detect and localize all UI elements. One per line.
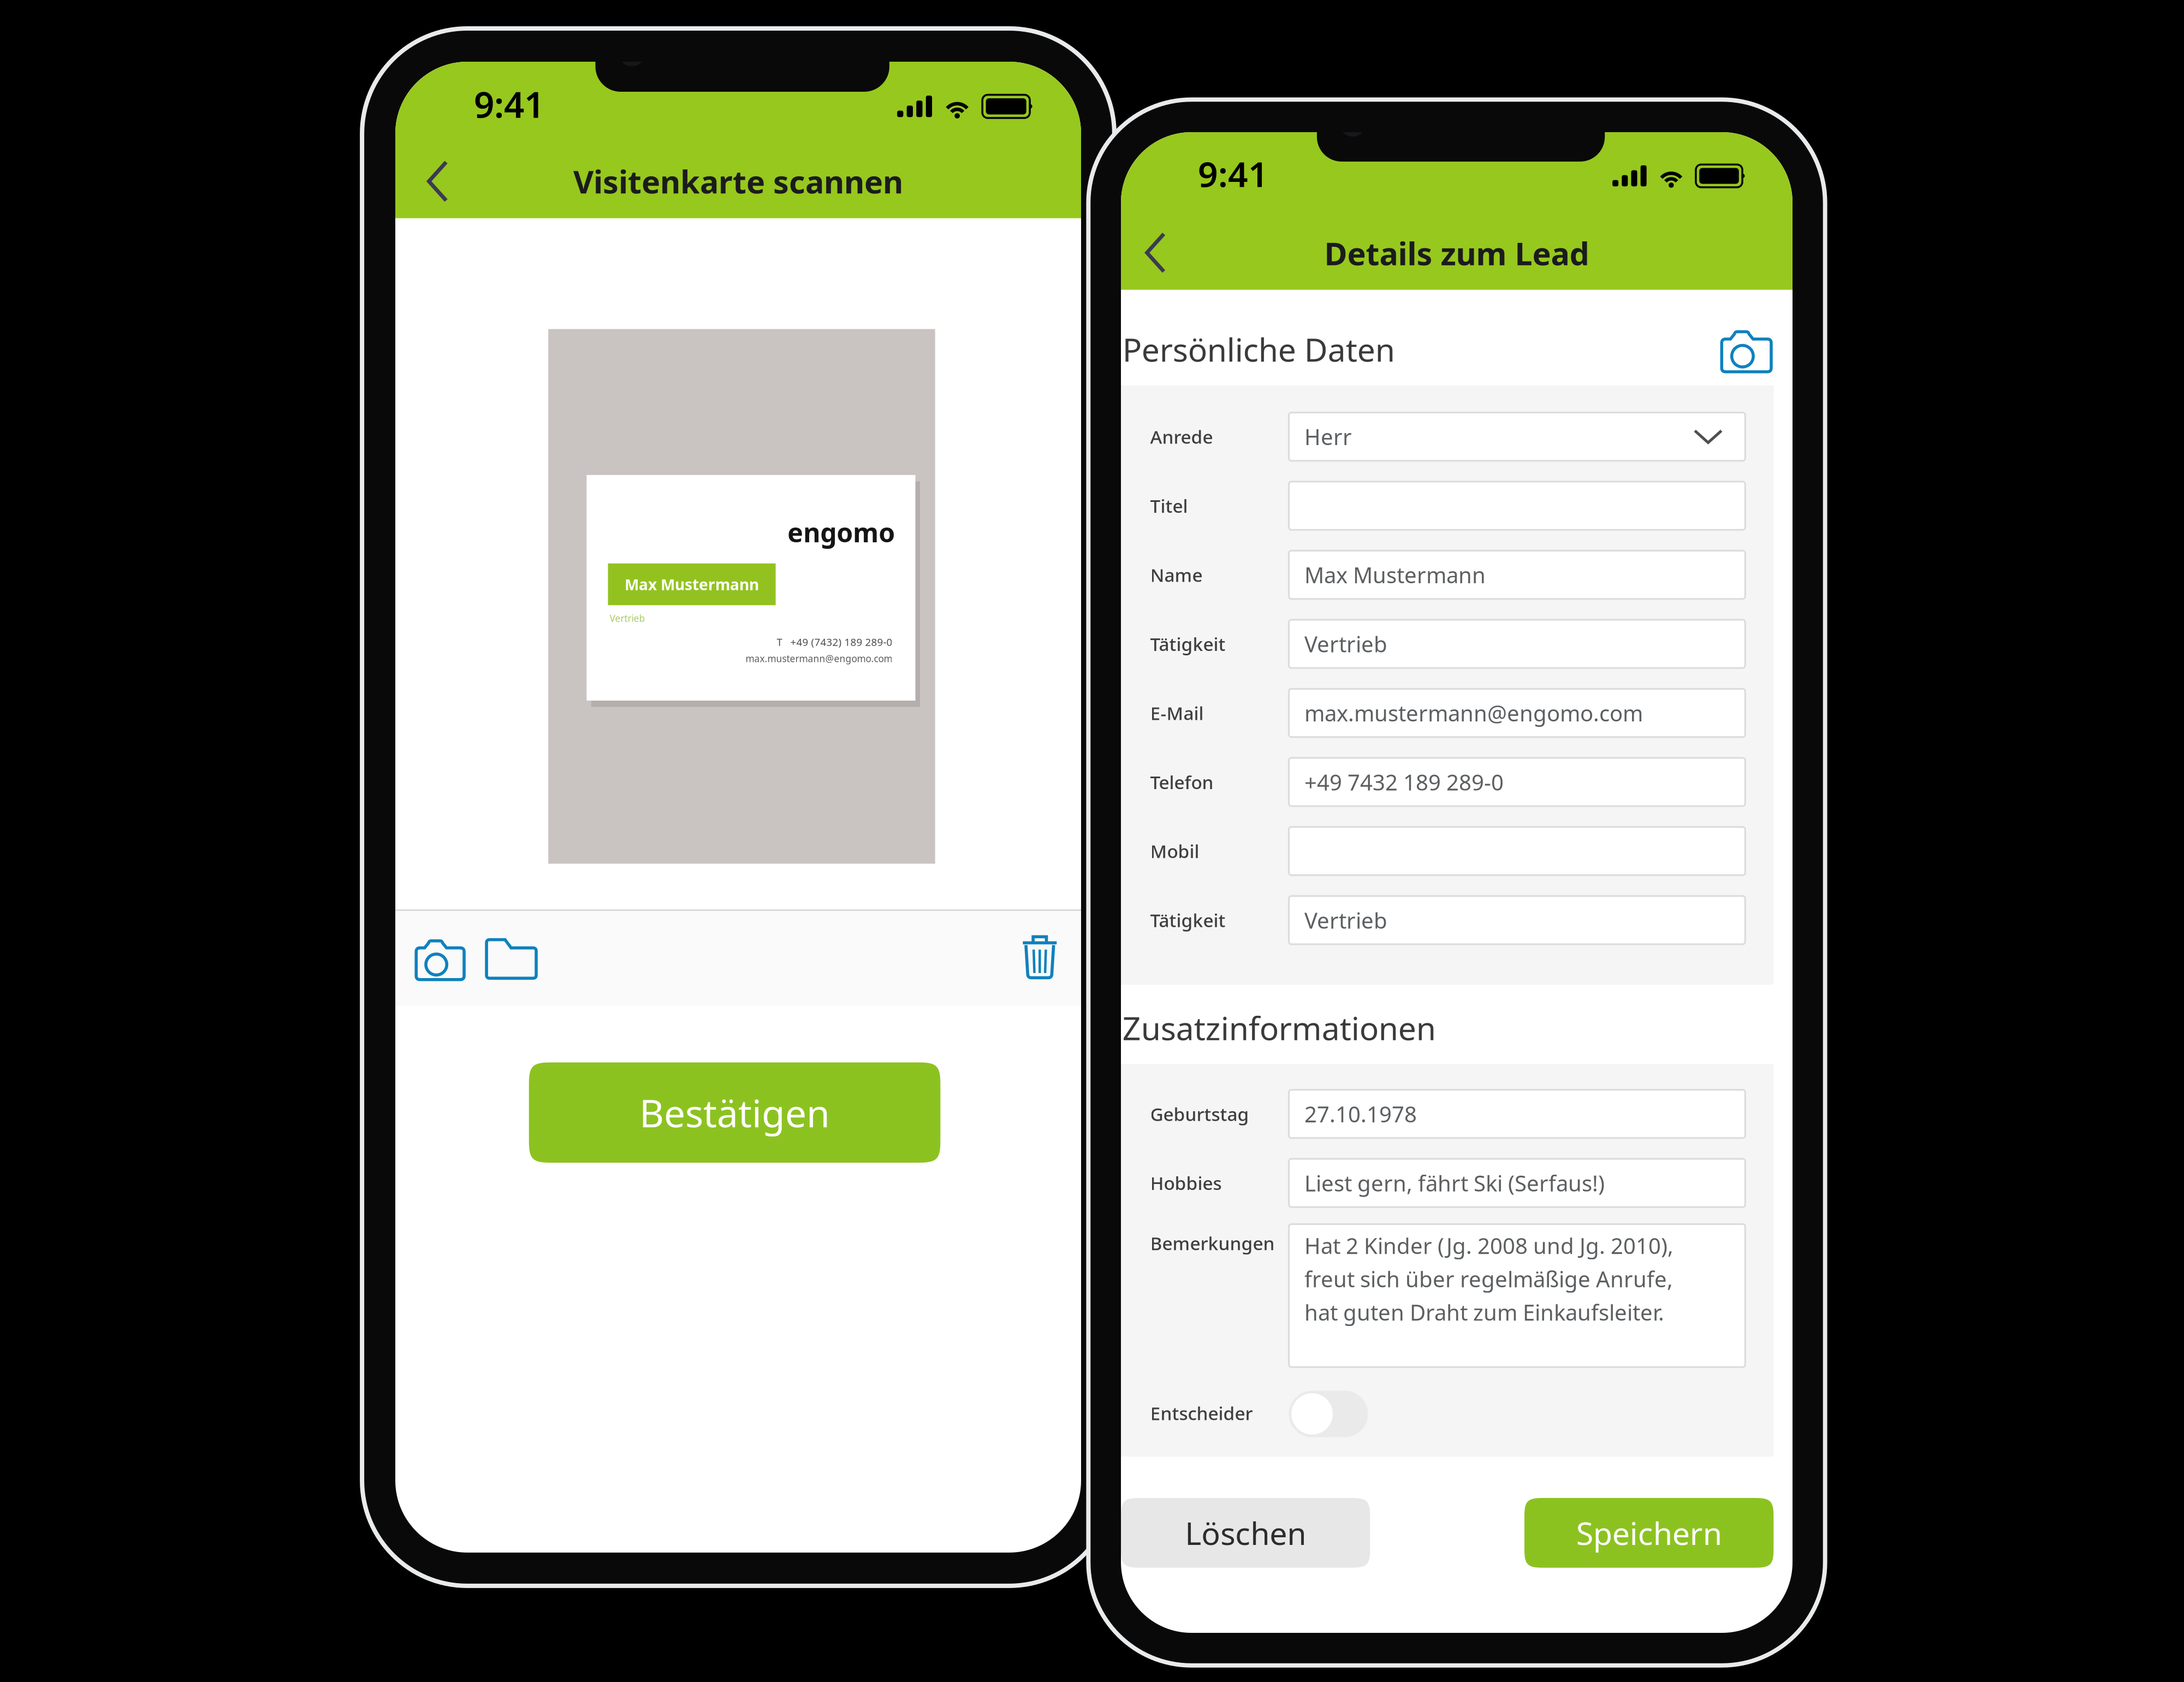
staticText: E-Mail (1150, 701, 1204, 725)
staticText: Liest gern, fährt Ski (Serfaus!) (1304, 1168, 1605, 1197)
staticText: Persönliche Daten (1122, 328, 1395, 370)
button[interactable]: Entscheider (1289, 1391, 1368, 1437)
staticText: Geburtstag (1150, 1102, 1249, 1126)
staticText: Max Mustermann (1304, 560, 1486, 589)
staticText: Telefon (1150, 770, 1214, 794)
staticText: Hobbies (1150, 1171, 1222, 1195)
button[interactable]: Datei öffnen (478, 929, 548, 992)
staticText: Max Mustermann (625, 574, 759, 594)
staticText: Bestätigen (639, 1087, 830, 1138)
staticText: 9:41 (1198, 150, 1268, 197)
staticText: Löschen (1185, 1512, 1306, 1554)
staticText: Vertrieb (1304, 629, 1387, 658)
staticText: Anrede (1150, 425, 1213, 449)
button[interactable]: Löschen (1016, 925, 1072, 992)
staticText: Visitenkarte scannen (573, 160, 903, 202)
button[interactable]: Löschen (1121, 1498, 1370, 1568)
staticText: Details zum Lead (1324, 232, 1589, 274)
staticText: Vertrieb (1304, 906, 1387, 935)
button[interactable]: Zurück (416, 144, 487, 218)
staticText: Bemerkungen (1150, 1231, 1275, 1255)
staticText: Vertrieb (610, 612, 645, 625)
staticText: Mobil (1150, 839, 1199, 863)
button[interactable]: Speichern (1524, 1498, 1774, 1568)
staticText: Herr (1304, 422, 1352, 451)
staticText: hat guten Draht zum Einkaufsleiter. (1304, 1298, 1664, 1327)
staticText: Titel (1150, 494, 1188, 518)
staticText: Speichern (1576, 1512, 1722, 1554)
staticText: Zusatzinformationen (1122, 1006, 1436, 1049)
staticText: Tätigkeit (1150, 632, 1226, 656)
button[interactable]: Zurück (1135, 217, 1204, 290)
staticText: 9:41 (474, 80, 544, 128)
staticText: Hat 2 Kinder (Jg. 2008 und Jg. 2010), (1304, 1231, 1673, 1260)
staticText: max.mustermann@engomo.com (1304, 698, 1643, 727)
staticText: max.mustermann@engomo.com (746, 652, 892, 665)
button[interactable]: Kamera (408, 929, 478, 992)
staticText: Entscheider (1150, 1401, 1253, 1425)
staticText: +49 7432 189 289-0 (1304, 767, 1504, 796)
staticText: engomo (787, 515, 895, 549)
staticText: T +49 (7432) 189 289-0 (777, 635, 892, 649)
staticText: Name (1150, 563, 1203, 587)
staticText: 27.10.1978 (1304, 1099, 1417, 1128)
staticText: freut sich über regelmäßige Anrufe, (1304, 1264, 1673, 1293)
button[interactable]: Bestätigen (529, 1062, 940, 1163)
button[interactable]: Foto aufnehmen (1713, 323, 1782, 378)
staticText: Tätigkeit (1150, 908, 1226, 932)
